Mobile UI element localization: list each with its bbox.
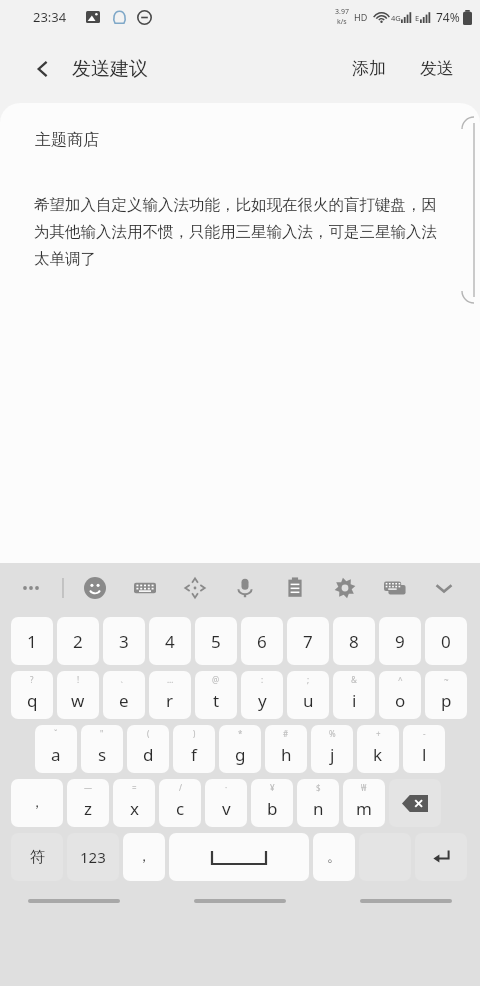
button[interactable]: ₩ bbox=[343, 779, 385, 827]
staticText: w bbox=[71, 689, 85, 712]
button[interactable]: ， bbox=[11, 779, 63, 827]
staticText: s bbox=[98, 743, 107, 766]
button[interactable]: ^ bbox=[379, 671, 421, 719]
button[interactable]: 、 bbox=[103, 671, 145, 719]
button[interactable]: ? bbox=[11, 671, 53, 719]
staticText: 5 bbox=[211, 630, 221, 653]
staticText: a bbox=[51, 743, 61, 766]
staticText: h bbox=[281, 743, 292, 766]
button[interactable]: ; bbox=[287, 671, 329, 719]
button[interactable]: Hide keyboard bbox=[427, 571, 461, 605]
button[interactable]: ! bbox=[57, 671, 99, 719]
staticText: l bbox=[422, 743, 427, 766]
button[interactable]: Back bbox=[24, 50, 62, 88]
staticText: k bbox=[373, 743, 383, 766]
button[interactable]: Switch keyboard bbox=[378, 571, 412, 605]
button[interactable]: Navigation bbox=[360, 891, 452, 911]
staticText: 1 bbox=[27, 630, 37, 653]
button[interactable]: Navigation bbox=[194, 891, 286, 911]
button[interactable]: 发送 bbox=[414, 52, 460, 85]
button[interactable]: Backspace bbox=[389, 779, 441, 827]
button[interactable]: $ bbox=[297, 779, 339, 827]
staticText: o bbox=[395, 689, 406, 712]
button[interactable]: ( bbox=[127, 725, 169, 773]
staticText: 123 bbox=[80, 847, 106, 867]
button[interactable]: Navigation bbox=[28, 891, 120, 911]
staticText: z bbox=[84, 797, 92, 820]
button[interactable]: ， bbox=[123, 833, 165, 881]
button[interactable]: · bbox=[205, 779, 247, 827]
button[interactable]: 1 bbox=[11, 617, 53, 665]
button[interactable]: # bbox=[265, 725, 307, 773]
staticText: ^ bbox=[398, 674, 403, 685]
staticText: ， bbox=[30, 794, 44, 812]
button[interactable]: 4 bbox=[149, 617, 191, 665]
staticText: 74% bbox=[436, 9, 460, 25]
button[interactable]: Space bbox=[169, 833, 309, 881]
staticText: x bbox=[130, 797, 139, 820]
button[interactable]: / bbox=[159, 779, 201, 827]
button[interactable]: Settings bbox=[328, 571, 362, 605]
button[interactable]: = bbox=[113, 779, 155, 827]
button[interactable]: 8 bbox=[333, 617, 375, 665]
staticText: 6 bbox=[257, 630, 267, 653]
button[interactable]: Voice input bbox=[228, 571, 262, 605]
button[interactable]: ¥ bbox=[251, 779, 293, 827]
button[interactable]: ) bbox=[173, 725, 215, 773]
button[interactable]: : bbox=[241, 671, 283, 719]
button[interactable]: 0 bbox=[425, 617, 467, 665]
staticText: ˇ bbox=[54, 728, 58, 739]
staticText: 23:34 bbox=[33, 8, 67, 26]
staticText: 希望加入自定义输入法功能，比如现在很火的盲打键盘，因为其他输入法用不惯，只能用三… bbox=[34, 195, 450, 269]
button[interactable]: … bbox=[149, 671, 191, 719]
button[interactable]: " bbox=[81, 725, 123, 773]
button[interactable]: 9 bbox=[379, 617, 421, 665]
staticText: v bbox=[222, 797, 231, 820]
button[interactable]: @ bbox=[195, 671, 237, 719]
button[interactable]: - bbox=[403, 725, 445, 773]
button[interactable]: 6 bbox=[241, 617, 283, 665]
button[interactable]: 主题商店 bbox=[0, 103, 480, 563]
button[interactable]: Move cursor bbox=[178, 571, 212, 605]
staticText: + bbox=[376, 728, 381, 739]
button[interactable]: % bbox=[311, 725, 353, 773]
button[interactable]: Keyboard layout bbox=[128, 571, 162, 605]
button[interactable]: 2 bbox=[57, 617, 99, 665]
button[interactable]: 5 bbox=[195, 617, 237, 665]
button[interactable]: Enter bbox=[415, 833, 467, 881]
button[interactable]: + bbox=[357, 725, 399, 773]
staticText: % bbox=[329, 728, 336, 739]
button[interactable]: Emoji bbox=[78, 571, 112, 605]
staticText: = bbox=[132, 782, 137, 793]
staticText: d bbox=[143, 743, 154, 766]
staticText: t bbox=[213, 689, 220, 712]
button[interactable]: ˇ bbox=[35, 725, 77, 773]
staticText: e bbox=[119, 689, 129, 712]
button[interactable]: & bbox=[333, 671, 375, 719]
staticText: ¥ bbox=[270, 782, 275, 793]
button[interactable]: * bbox=[219, 725, 261, 773]
button[interactable]: More options bbox=[14, 571, 48, 605]
staticText: m bbox=[356, 797, 372, 820]
button[interactable]: 添加 bbox=[346, 52, 392, 85]
staticText: k/s bbox=[337, 17, 347, 27]
button[interactable]: 。 bbox=[313, 833, 355, 881]
button[interactable]: 123 bbox=[67, 833, 119, 881]
button[interactable]: 7 bbox=[287, 617, 329, 665]
staticText: 符 bbox=[30, 848, 45, 867]
staticText: ( bbox=[147, 728, 150, 739]
button[interactable]: 符 bbox=[11, 833, 63, 881]
staticText: ! bbox=[77, 674, 80, 685]
button[interactable]: — bbox=[67, 779, 109, 827]
staticText: i bbox=[352, 689, 357, 712]
staticText: 2 bbox=[73, 630, 83, 653]
button[interactable]: 3 bbox=[103, 617, 145, 665]
staticText: ; bbox=[307, 674, 310, 685]
staticText: … bbox=[167, 674, 174, 685]
staticText: 。 bbox=[327, 848, 341, 866]
staticText: y bbox=[258, 689, 267, 712]
staticText: HD bbox=[354, 11, 368, 23]
button[interactable]: ~ bbox=[425, 671, 467, 719]
button[interactable]: Clipboard bbox=[278, 571, 312, 605]
